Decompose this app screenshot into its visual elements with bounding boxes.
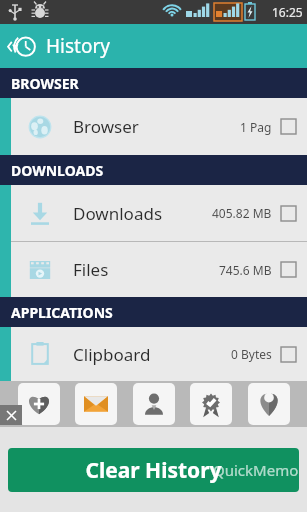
staticText: APPLICATIONS xyxy=(11,303,113,322)
staticText: BROWSER xyxy=(11,74,79,93)
button[interactable]: Files xyxy=(0,242,307,297)
staticText: 16:25 xyxy=(272,4,303,20)
button[interactable]: Navigate up, History xyxy=(0,24,118,68)
staticText: DOWNLOADS xyxy=(11,161,104,180)
staticText: History xyxy=(46,33,110,59)
button[interactable]: Rewards xyxy=(190,383,232,425)
button[interactable]: Select Downloads xyxy=(280,205,297,222)
button[interactable]: Browser xyxy=(0,98,307,155)
button[interactable]: Select Clipboard xyxy=(280,346,297,363)
button[interactable]: Select Files xyxy=(280,261,297,278)
staticText: 405.82 MB xyxy=(212,205,272,221)
button[interactable]: Contacts xyxy=(133,383,175,425)
staticText: Downloads xyxy=(73,202,163,225)
staticText: Clipboard xyxy=(73,343,151,366)
staticText: Clear History xyxy=(85,456,222,485)
button[interactable]: Mail xyxy=(75,383,117,425)
staticText: 0 Bytes xyxy=(231,346,272,362)
button[interactable]: Clipboard xyxy=(0,327,307,381)
staticText: 745.6 MB xyxy=(219,262,272,278)
button[interactable]: Location xyxy=(248,383,290,425)
button[interactable]: Close xyxy=(0,405,22,425)
staticText: Files xyxy=(73,258,109,281)
staticText: 1 Pag xyxy=(240,119,272,135)
button[interactable]: Downloads xyxy=(0,185,307,241)
button[interactable]: Select Browser xyxy=(280,118,297,135)
button[interactable]: Clear History xyxy=(8,448,299,492)
staticText: QuickMemo xyxy=(213,460,299,480)
staticText: Browser xyxy=(73,115,139,138)
button[interactable]: Favorites xyxy=(18,383,60,425)
